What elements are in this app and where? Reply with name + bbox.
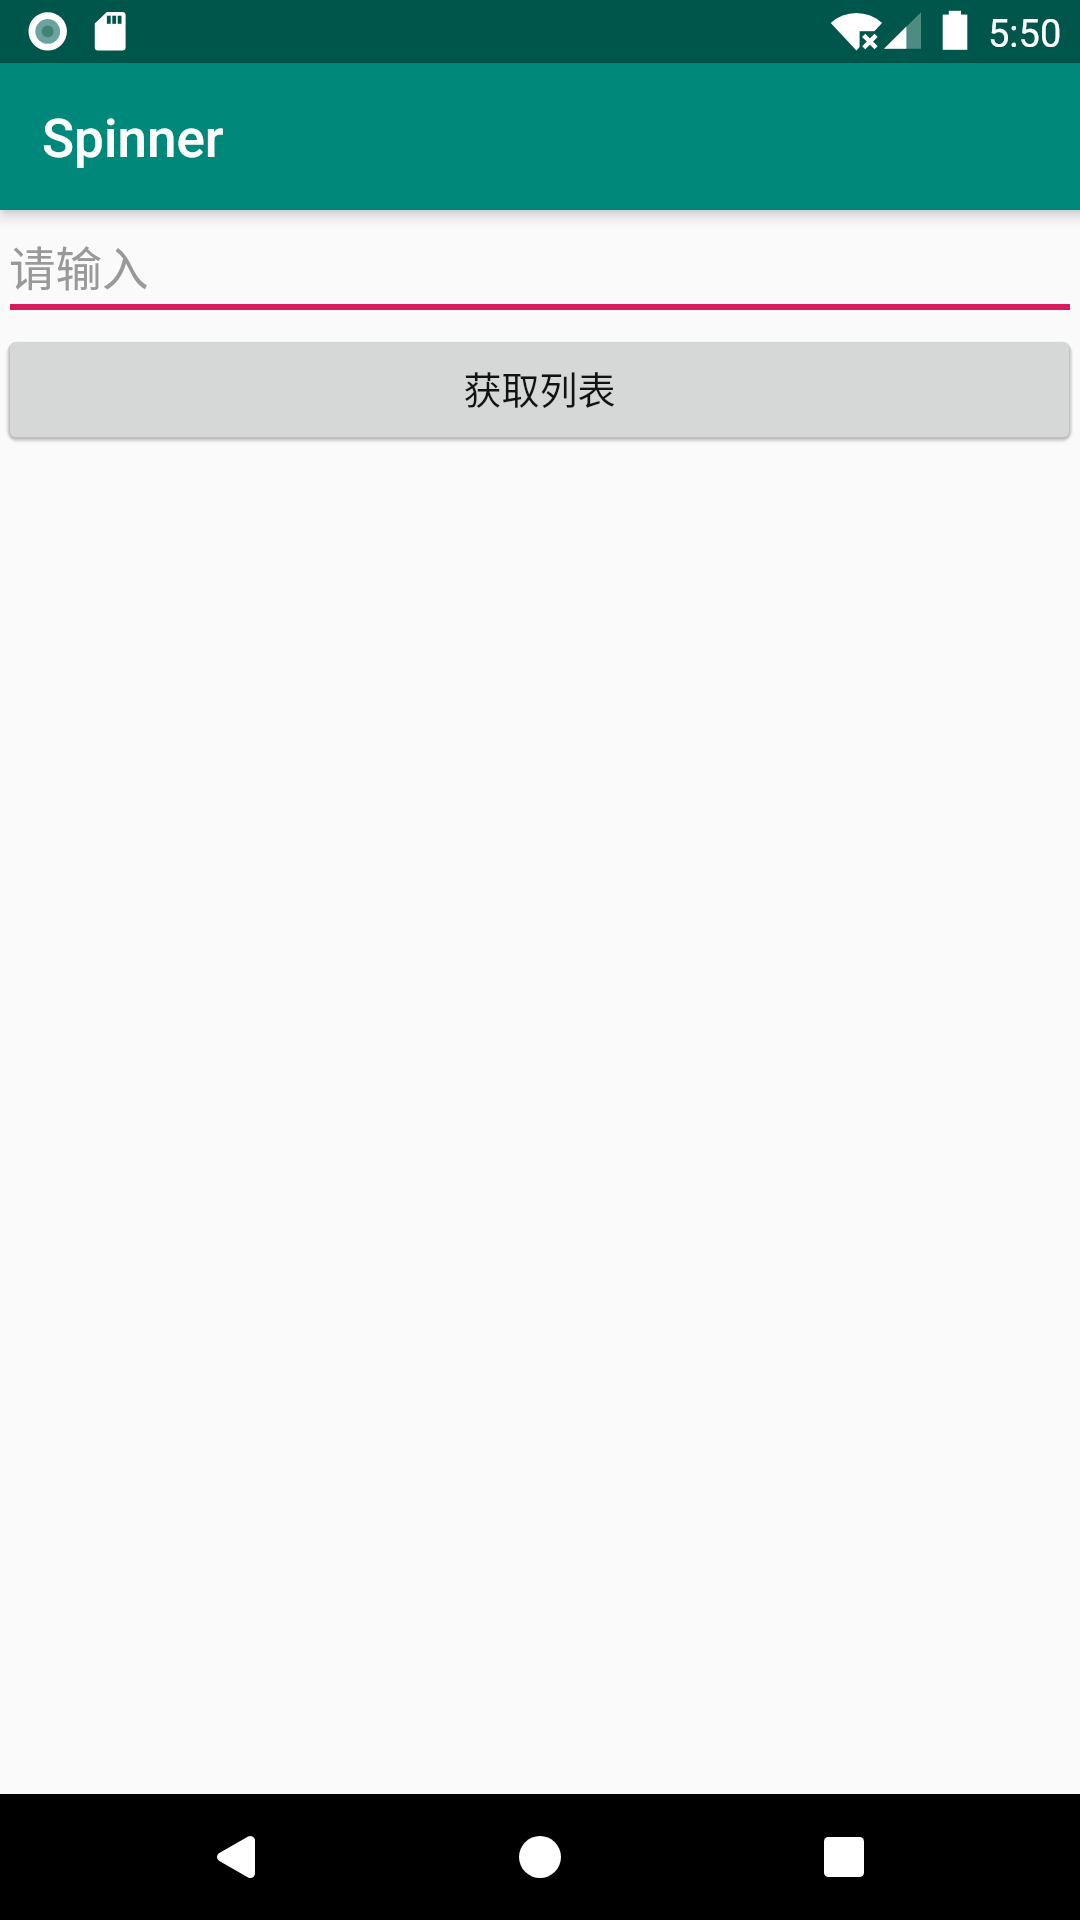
staticText: Spinner (42, 108, 224, 170)
button[interactable]: 请输入 (0, 210, 1080, 304)
button[interactable]: Back (194, 1815, 278, 1899)
staticText: 请输入 (9, 232, 149, 299)
button[interactable]: Home (498, 1815, 582, 1899)
button[interactable]: Recent apps (802, 1815, 886, 1899)
staticText: 获取列表 (463, 360, 616, 415)
staticText: 5:50 (988, 12, 1062, 57)
button[interactable]: 获取列表 (10, 342, 1069, 437)
